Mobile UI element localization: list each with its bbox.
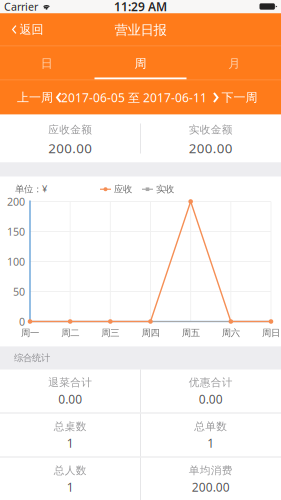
staticText: 0 xyxy=(19,314,25,329)
staticText: 实收 xyxy=(156,183,174,195)
staticText: 150 xyxy=(7,224,25,239)
staticText: 返回 xyxy=(19,22,43,37)
staticText: 周六 xyxy=(222,327,240,339)
staticText: 周 xyxy=(134,56,146,71)
staticText: Carrier xyxy=(4,0,38,14)
staticText: 下一周 xyxy=(221,90,257,105)
staticText: 优惠合计 xyxy=(189,376,233,389)
staticText: 1 xyxy=(207,435,214,451)
staticText: 1 xyxy=(67,435,74,451)
staticText: 周三 xyxy=(101,327,119,339)
staticText: 2017-06-05 至 2017-06-11 xyxy=(61,89,207,105)
staticText: 周日 xyxy=(262,327,280,339)
staticText: 上一周 xyxy=(17,90,53,105)
staticText: 总单数 xyxy=(194,420,227,433)
staticText: 50 xyxy=(13,284,25,299)
button[interactable]: 上一周 xyxy=(13,84,63,110)
staticText: 0.00 xyxy=(58,391,82,407)
staticText: 日 xyxy=(41,56,53,71)
staticText: 退菜合计 xyxy=(48,376,92,389)
button[interactable]: 返回 xyxy=(7,15,48,43)
staticText: 应收金额 xyxy=(48,123,92,136)
staticText: 100 xyxy=(7,254,25,269)
staticText: 实收金额 xyxy=(189,123,233,136)
staticText: 总人数 xyxy=(54,464,87,477)
staticText: 11:29 AM xyxy=(114,0,167,14)
staticText: 200.00 xyxy=(189,139,233,157)
staticText: 周一 xyxy=(21,327,39,339)
staticText: 1 xyxy=(67,479,74,495)
staticText: 200.00 xyxy=(48,139,92,157)
staticText: 应收 xyxy=(114,183,132,195)
staticText: 综合统计 xyxy=(14,352,50,364)
staticText: 单均消费 xyxy=(189,464,233,477)
button[interactable]: 日 xyxy=(0,46,94,80)
staticText: 总桌数 xyxy=(54,420,87,433)
staticText: 单位：¥ xyxy=(15,182,47,195)
button[interactable]: 周 xyxy=(94,46,187,80)
staticText: 周四 xyxy=(141,327,159,339)
staticText: 0.00 xyxy=(199,391,223,407)
staticText: 月 xyxy=(228,56,240,71)
staticText: 200.00 xyxy=(192,479,230,495)
staticText: 200 xyxy=(7,194,25,209)
staticText: 营业日报 xyxy=(114,22,166,38)
button[interactable]: 下一周 xyxy=(211,84,261,110)
button[interactable]: 月 xyxy=(187,46,281,80)
staticText: 周五 xyxy=(182,327,200,339)
staticText: 周二 xyxy=(61,327,79,339)
